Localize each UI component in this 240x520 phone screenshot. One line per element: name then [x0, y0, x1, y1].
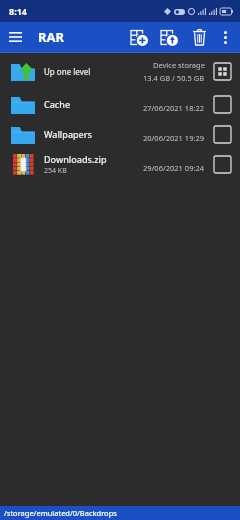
staticText: 29/06/2021 09:24	[143, 163, 205, 173]
staticText: /storage/emulated/0/Backdrops	[4, 508, 117, 518]
staticText: 13.4 GB / 50.5 GB	[143, 73, 205, 83]
button[interactable]: More options	[214, 26, 236, 48]
button[interactable]: Switch to grid view	[214, 63, 231, 80]
staticText: Wallpapers	[44, 128, 92, 140]
button[interactable]: Cache	[0, 89, 240, 119]
button[interactable]: Select Downloads.zip	[214, 156, 231, 173]
staticText: RAR	[38, 28, 65, 46]
button[interactable]: /storage/emulated/0/Backdrops	[0, 506, 240, 520]
staticText: 20/06/2021 19:29	[143, 133, 205, 143]
button[interactable]: Up one level	[0, 53, 240, 89]
staticText: 8:14	[9, 5, 27, 17]
staticText: Downloads.zip	[44, 153, 107, 165]
button[interactable]: Open navigation drawer	[0, 22, 30, 52]
staticText: Device storage	[153, 60, 205, 70]
button[interactable]: Select Wallpapers	[214, 126, 231, 143]
staticText: Cache	[44, 98, 71, 110]
staticText: 27/06/2021 18:22	[143, 103, 205, 113]
button[interactable]: Add to archive	[124, 22, 154, 52]
button[interactable]: Delete	[184, 22, 214, 52]
button[interactable]: Extract archive	[154, 22, 184, 52]
staticText: Up one level	[44, 66, 91, 77]
button[interactable]: Downloads.zip	[0, 149, 240, 179]
button[interactable]: Select Cache	[214, 96, 231, 113]
staticText: 254 KB	[44, 166, 67, 176]
button[interactable]: Wallpapers	[0, 119, 240, 149]
